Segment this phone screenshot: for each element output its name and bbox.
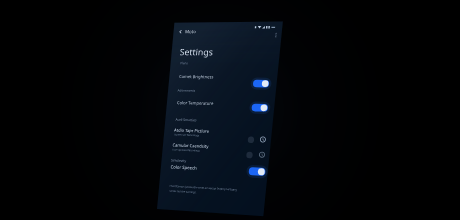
button[interactable]	[0, 0, 460, 220]
